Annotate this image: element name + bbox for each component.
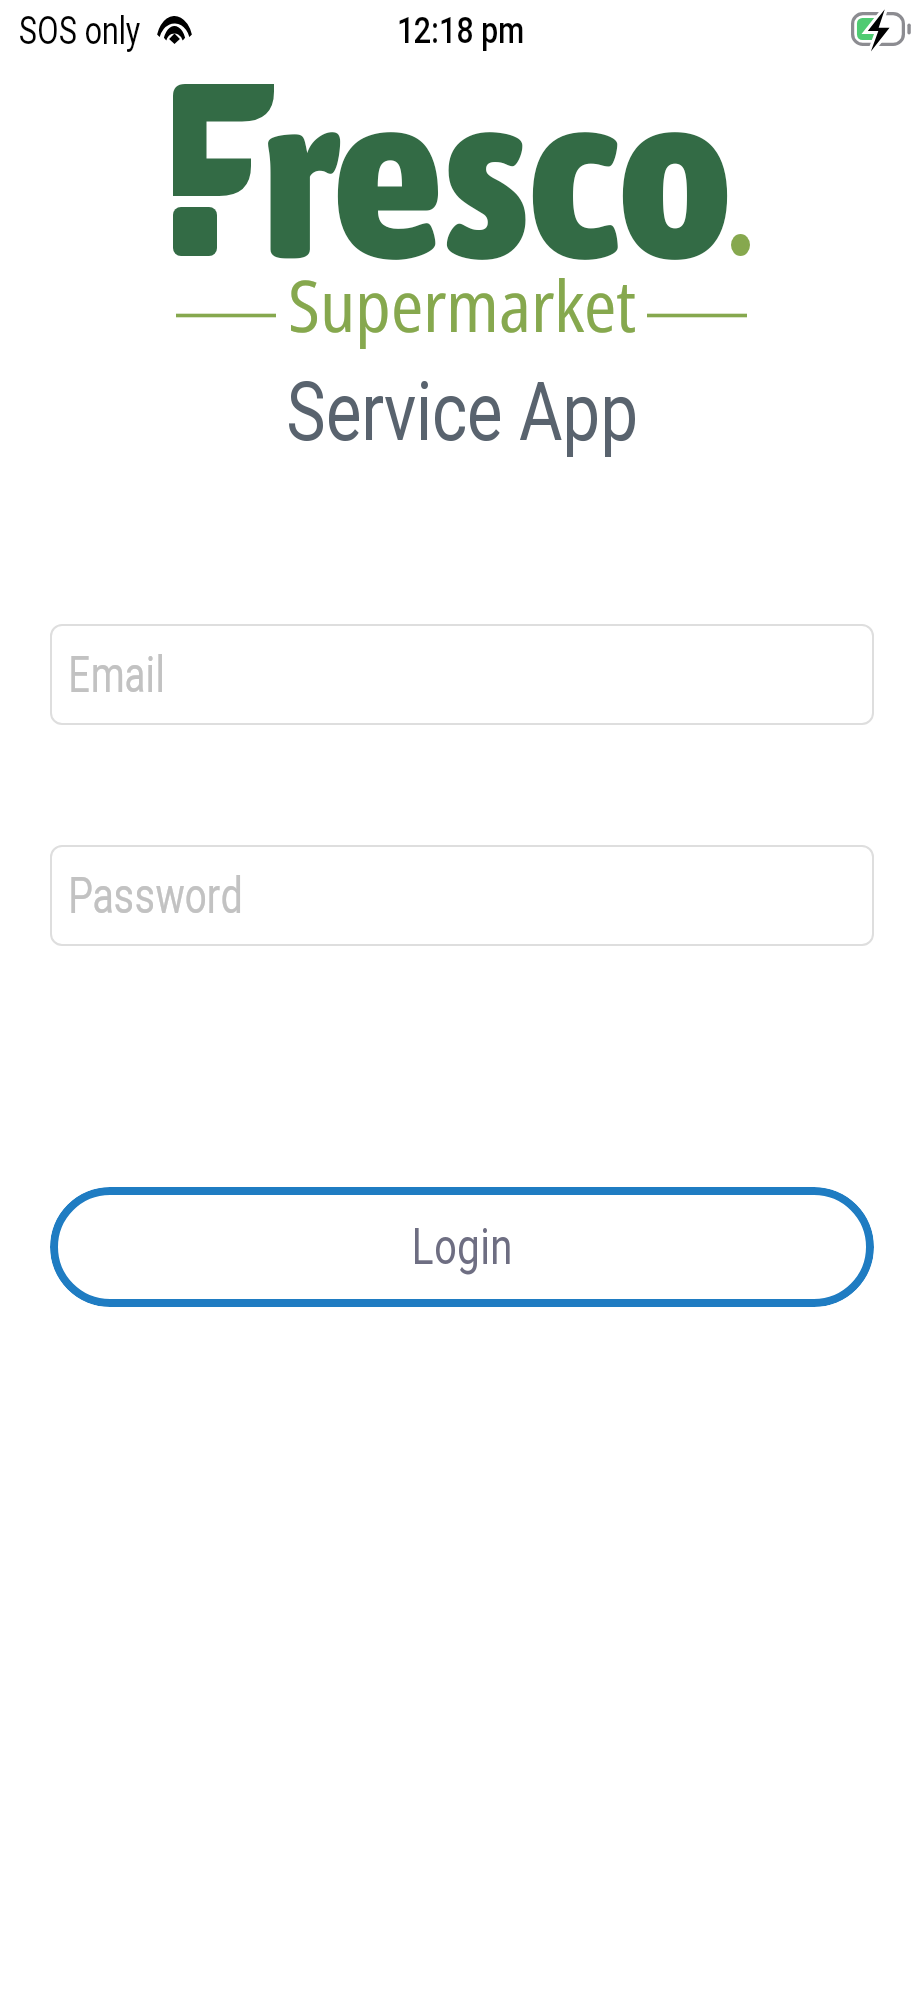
button[interactable] [50,845,874,946]
button[interactable] [50,1187,874,1307]
button[interactable] [50,624,874,725]
other: Status bar [0,0,924,62]
